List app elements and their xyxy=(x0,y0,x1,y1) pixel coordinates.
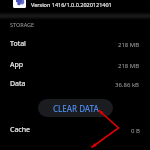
staticText: 218 MB xyxy=(118,41,140,49)
staticText: Total xyxy=(10,39,26,49)
button[interactable]: Cache xyxy=(0,122,150,138)
staticText: CLEAR DATA xyxy=(53,103,99,114)
button[interactable]: Data xyxy=(0,76,150,92)
staticText: 36.86 kB xyxy=(115,81,140,89)
staticText: App xyxy=(10,60,24,70)
staticText: 0 B xyxy=(131,127,140,135)
staticText: Cache xyxy=(10,125,30,135)
staticText: 218 MB xyxy=(118,62,140,70)
staticText: Data xyxy=(10,79,26,89)
button[interactable]: Total xyxy=(0,36,150,52)
button[interactable]: App xyxy=(0,57,150,73)
button[interactable]: CLEAR DATA xyxy=(38,99,113,117)
staticText: Version 1416/1.0.0.2020121401 xyxy=(31,1,112,8)
staticText: STORAGE xyxy=(10,21,35,28)
